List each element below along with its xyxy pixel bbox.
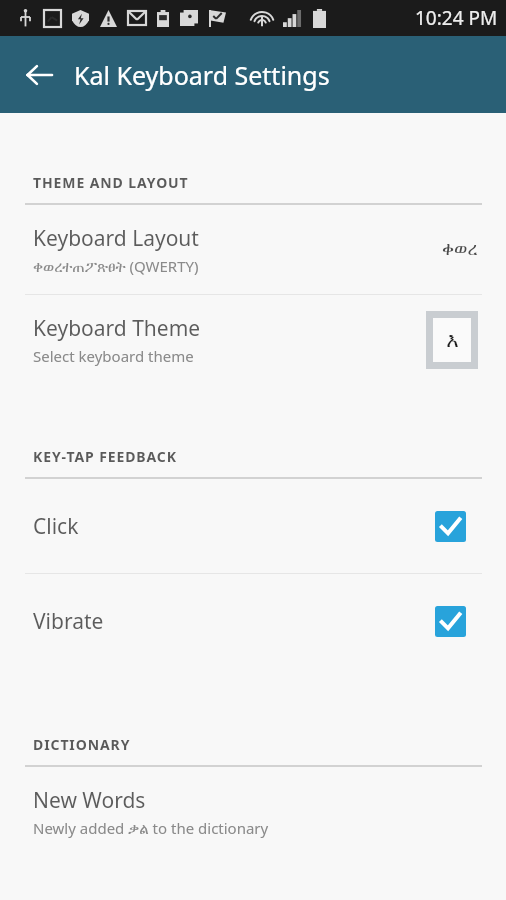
button[interactable]: Keyboard Theme	[0, 295, 506, 384]
button[interactable]: Keyboard Layout	[0, 205, 506, 294]
staticText: ቀወረ	[442, 241, 478, 259]
staticText: ቀወረተጠፖጽፀት (QWERTY)	[33, 256, 199, 276]
staticText: እ	[446, 330, 459, 351]
staticText: Vibrate	[33, 607, 435, 636]
staticText: Keyboard Theme	[33, 314, 201, 343]
staticText: Kal Keyboard Settings	[74, 58, 330, 92]
button[interactable]: Click	[0, 479, 506, 573]
staticText: Newly added ቃል to the dictionary	[33, 818, 269, 838]
staticText: Keyboard Layout	[33, 224, 199, 253]
button[interactable]: Back	[12, 48, 66, 102]
staticText: DICTIONARY	[33, 735, 131, 754]
staticText: 10:24 PM	[415, 5, 498, 31]
staticText: Select keyboard theme	[33, 346, 194, 366]
staticText: THEME AND LAYOUT	[33, 173, 189, 192]
button[interactable]: Vibrate	[0, 574, 506, 668]
staticText: Click	[33, 512, 435, 541]
button[interactable]: New Words	[0, 767, 506, 856]
staticText: KEY-TAP FEEDBACK	[33, 447, 177, 466]
staticText: New Words	[33, 786, 146, 815]
